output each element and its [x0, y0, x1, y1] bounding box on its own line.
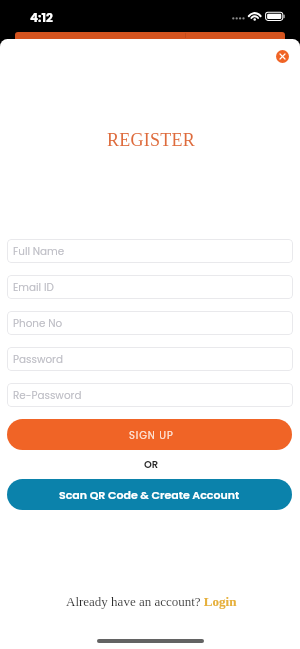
button[interactable]: Re-Password: [7, 383, 293, 407]
button[interactable]: SIGN UP: [7, 419, 292, 450]
button[interactable]: Full Name: [7, 239, 293, 263]
staticText: 4:12: [30, 9, 53, 26]
button[interactable]: Email ID: [7, 275, 293, 299]
staticText: Email ID: [13, 280, 54, 295]
button[interactable]: Password: [7, 347, 293, 371]
staticText: SIGN UP: [129, 428, 174, 442]
button[interactable]: Scan QR Code & Create Account: [7, 479, 292, 510]
staticText: REGISTER: [107, 130, 196, 150]
staticText: Full Name: [13, 244, 65, 259]
staticText: Re-Password: [13, 388, 82, 403]
button[interactable]: Already have an account? Login: [66, 594, 237, 608]
staticText: OR: [144, 457, 159, 471]
staticText: Scan QR Code & Create Account: [59, 487, 240, 502]
staticText: Password: [13, 352, 63, 367]
button[interactable]: Close: [276, 50, 289, 63]
staticText: Phone No: [13, 316, 63, 331]
button[interactable]: Phone No: [7, 311, 293, 335]
